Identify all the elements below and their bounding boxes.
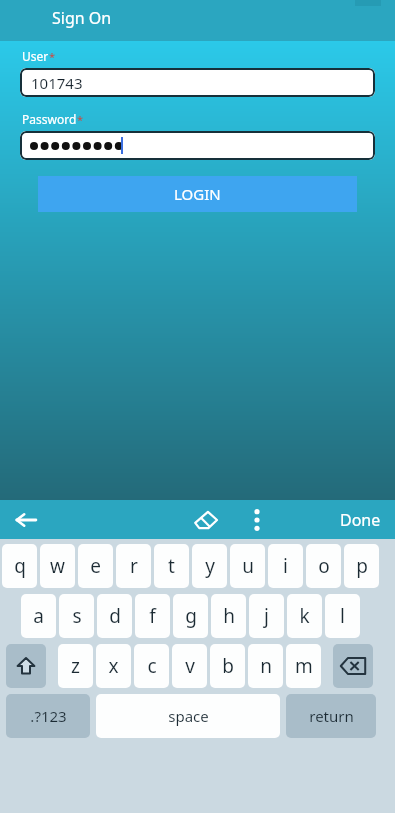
staticText: n [260, 653, 272, 679]
button[interactable]: Back [6, 500, 46, 539]
button[interactable]: v [172, 644, 207, 688]
button[interactable]: z [58, 644, 93, 688]
button[interactable]: g [173, 594, 208, 638]
staticText: k [299, 603, 310, 629]
button[interactable]: m [286, 644, 321, 688]
button[interactable]: r [116, 544, 151, 588]
button[interactable]: a [21, 594, 56, 638]
staticText: l [340, 603, 345, 629]
staticText: 101743 [31, 73, 83, 93]
button[interactable]: More options [240, 503, 274, 537]
staticText: y [205, 553, 215, 579]
button[interactable]: c [134, 644, 169, 688]
staticText: q [14, 553, 26, 579]
staticText: u [242, 553, 254, 579]
staticText: i [283, 553, 288, 579]
button[interactable]: y [192, 544, 227, 588]
staticText: LOGIN [174, 184, 221, 204]
button[interactable]: space [96, 694, 280, 738]
staticText: t [168, 553, 175, 579]
staticText: Sign On [52, 7, 112, 29]
button[interactable]: .?123 [6, 694, 90, 738]
staticText: .?123 [30, 706, 67, 726]
button[interactable]: w [40, 544, 75, 588]
button[interactable]: u [230, 544, 265, 588]
button[interactable]: o [306, 544, 341, 588]
button[interactable]: s [59, 594, 94, 638]
button[interactable] [6, 644, 46, 688]
button[interactable]: k [287, 594, 322, 638]
staticText: z [71, 653, 80, 679]
staticText: o [318, 553, 330, 579]
button[interactable]: q [2, 544, 37, 588]
button[interactable]: l [325, 594, 360, 638]
button[interactable]: LOGIN [38, 176, 357, 212]
staticText: d [109, 603, 121, 629]
button[interactable]: n [248, 644, 283, 688]
button[interactable] [333, 644, 373, 688]
staticText: a [33, 603, 44, 629]
button[interactable]: p [344, 544, 379, 588]
staticText: p [356, 553, 368, 579]
button[interactable]: x [96, 644, 131, 688]
staticText: space [168, 706, 209, 726]
staticText: e [90, 553, 101, 579]
staticText: g [185, 603, 197, 629]
button[interactable] [20, 131, 375, 160]
staticText: c [147, 653, 157, 679]
staticText: r [130, 553, 138, 579]
button[interactable]: b [210, 644, 245, 688]
staticText: b [222, 653, 234, 679]
staticText: w [50, 553, 65, 579]
staticText: f [149, 603, 156, 629]
staticText: Done [340, 509, 381, 531]
button[interactable]: f [135, 594, 170, 638]
staticText: s [72, 603, 82, 629]
staticText: j [264, 603, 269, 629]
button[interactable]: t [154, 544, 189, 588]
button[interactable]: i [268, 544, 303, 588]
button[interactable]: 101743 [20, 68, 375, 97]
button[interactable]: j [249, 594, 284, 638]
staticText: v [185, 653, 195, 679]
staticText: Password [22, 111, 77, 127]
button[interactable]: Erase [186, 500, 226, 539]
button[interactable]: h [211, 594, 246, 638]
staticText: return [309, 706, 354, 726]
button[interactable]: return [286, 694, 376, 738]
staticText: h [223, 603, 235, 629]
button[interactable]: e [78, 544, 113, 588]
button[interactable]: Done [340, 509, 381, 531]
button[interactable]: d [97, 594, 132, 638]
staticText: m [295, 653, 313, 679]
staticText: x [108, 653, 119, 679]
staticText: * [77, 112, 84, 127]
staticText: * [49, 49, 56, 64]
staticText: User [22, 48, 49, 64]
